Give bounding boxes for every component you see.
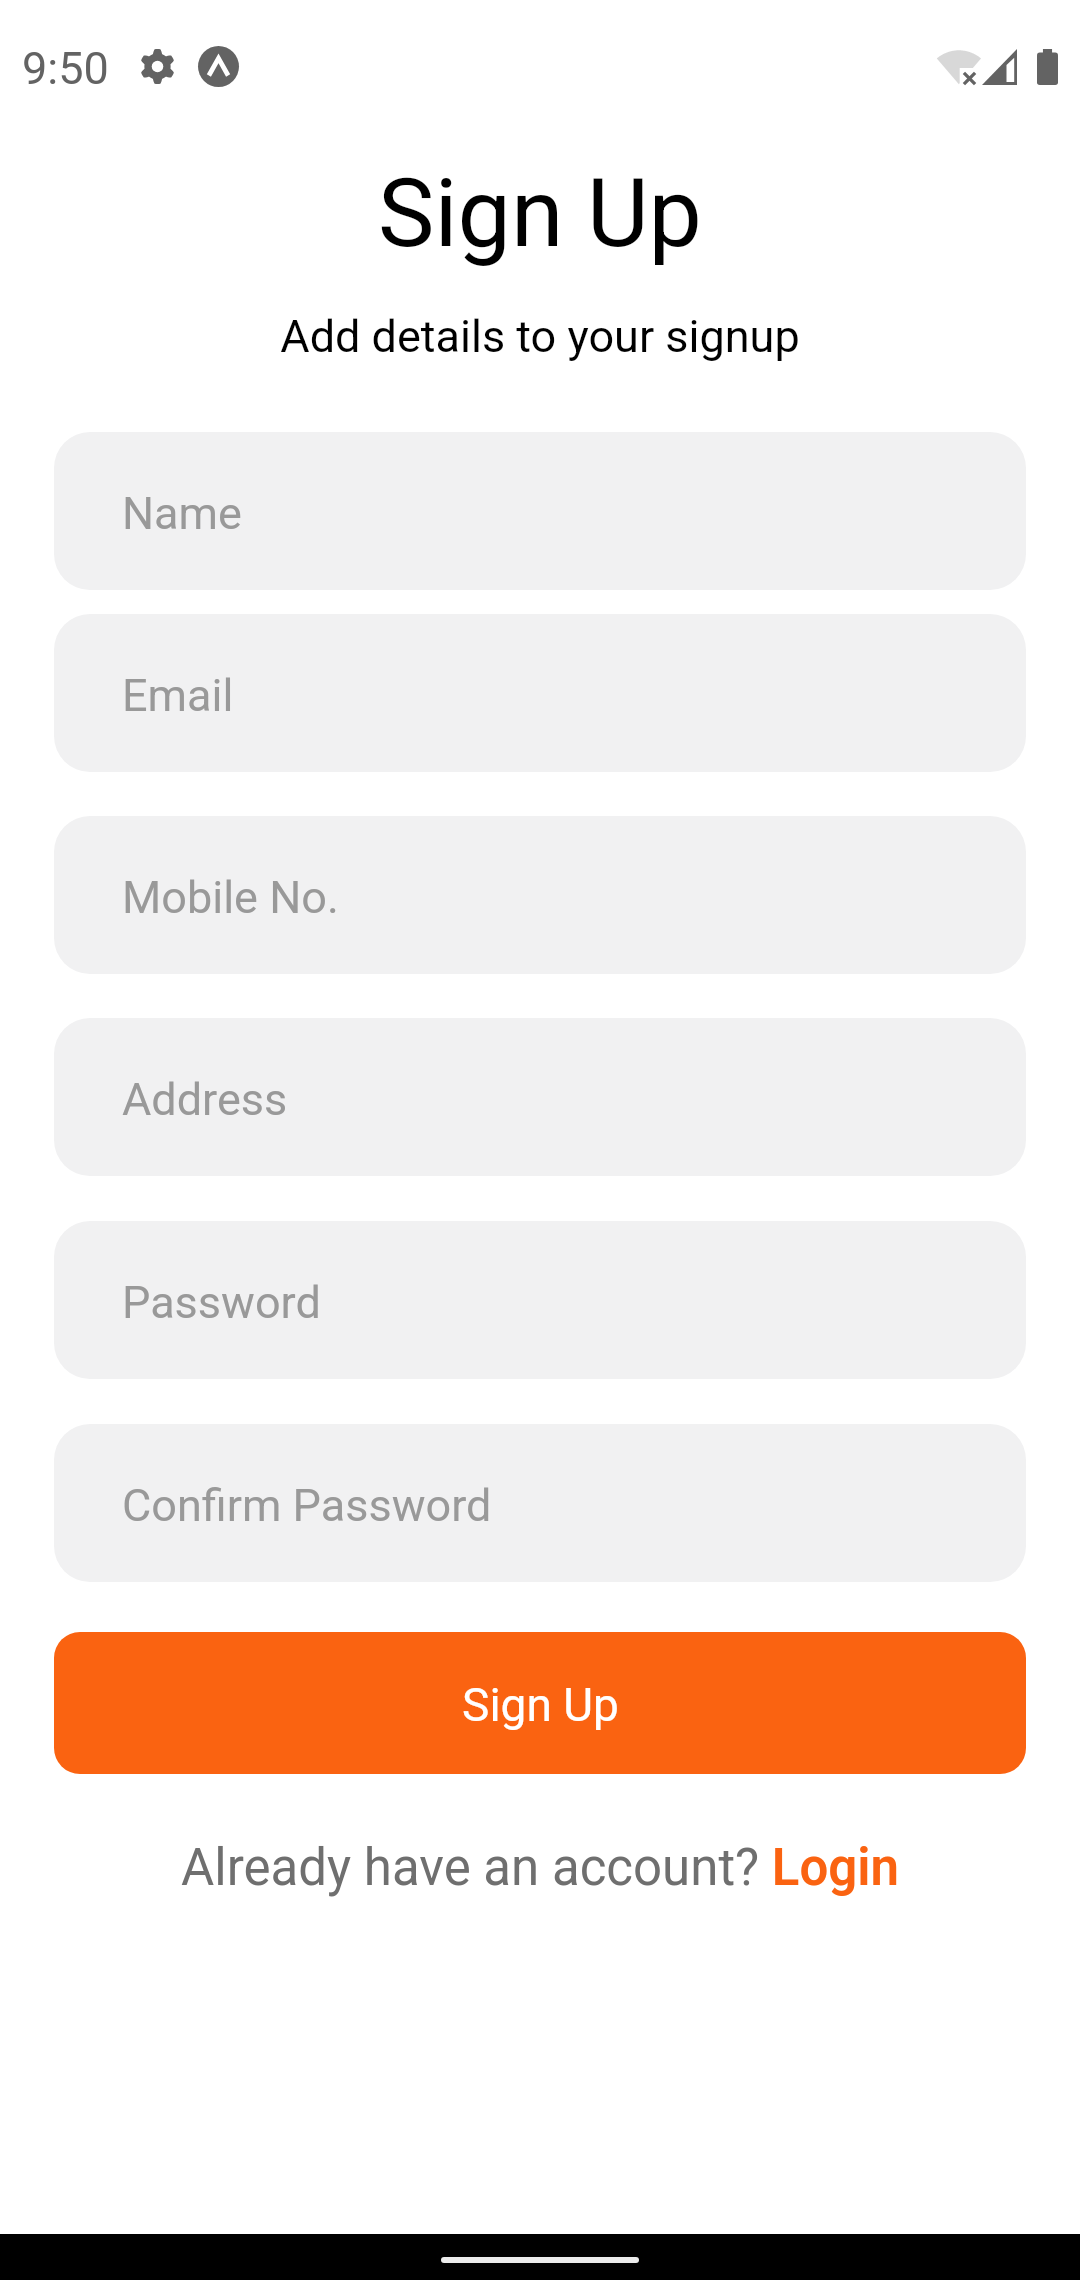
staticText: Password [122,1276,321,1329]
staticText: Address [122,1073,288,1126]
staticText: 9:50 [22,42,109,95]
button[interactable]: Confirm Password [54,1424,1026,1582]
staticText: Name [122,487,242,540]
staticText: Confirm Password [122,1479,492,1532]
button[interactable]: Name [54,432,1026,590]
staticText: Sign Up [0,158,1080,269]
staticText: Mobile No. [122,871,339,924]
staticText: Already have an account? Login [181,1838,900,1898]
button[interactable]: Password [54,1221,1026,1379]
staticText: Email [122,669,234,722]
button[interactable]: Email [54,614,1026,772]
staticText: Sign Up [462,1678,619,1732]
other: Notification [198,46,239,87]
button[interactable]: Address [54,1018,1026,1176]
other: Settings [140,49,175,84]
button[interactable]: Already have an account? Login [0,1813,1080,1923]
staticText: Add details to your signup [0,310,1080,363]
button[interactable]: Sign Up [54,1632,1026,1774]
button[interactable]: Mobile No. [54,816,1026,974]
